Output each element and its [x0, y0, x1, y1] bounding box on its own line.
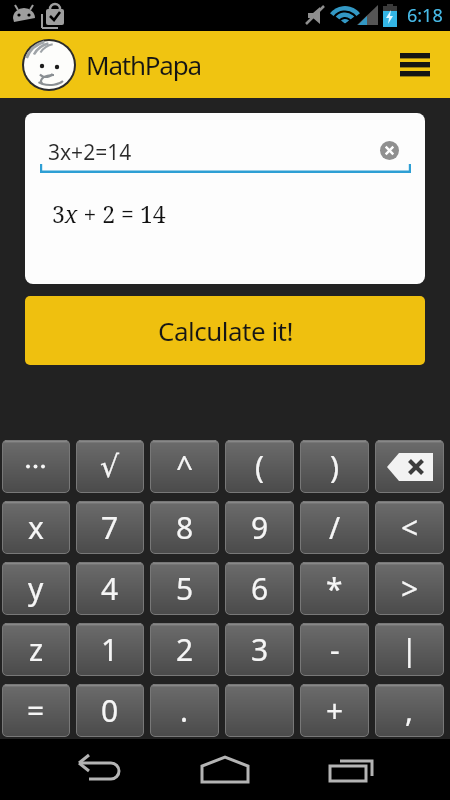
staticText: 2 [176, 629, 194, 670]
button[interactable]: √ [76, 440, 144, 493]
button[interactable]: 3x+2=14 [48, 138, 132, 167]
button[interactable] [225, 684, 294, 737]
button[interactable]: 6 [225, 562, 294, 615]
staticText: y [28, 568, 44, 609]
staticText: 7 [101, 507, 119, 548]
button[interactable]: = [2, 684, 70, 737]
button[interactable]: 1 [76, 623, 144, 676]
staticText: / [329, 507, 341, 548]
staticText: 1 [101, 629, 119, 670]
button[interactable] [387, 37, 443, 93]
staticText: z [29, 629, 44, 670]
staticText: 9 [251, 507, 269, 548]
staticText: √ [100, 449, 120, 484]
staticText: ^ [176, 446, 194, 487]
button[interactable]: - [300, 623, 369, 676]
button[interactable]: 3 [225, 623, 294, 676]
staticText: MathPapa [86, 47, 201, 82]
staticText: 8 [176, 507, 194, 548]
staticText: - [330, 629, 340, 670]
staticText: ( [255, 446, 264, 487]
button[interactable]: 0 [76, 684, 144, 737]
button[interactable] [375, 440, 444, 493]
button[interactable]: 5 [150, 562, 219, 615]
button[interactable] [320, 739, 382, 800]
staticText: 6:18 [407, 3, 443, 28]
button[interactable]: ( [225, 440, 294, 493]
staticText: 6 [251, 568, 269, 609]
button[interactable]: y [2, 562, 70, 615]
staticText: * [326, 568, 343, 609]
button[interactable]: . [150, 684, 219, 737]
staticText: , [405, 690, 414, 731]
button[interactable] [373, 134, 405, 166]
staticText: < [401, 507, 419, 548]
button[interactable] [70, 739, 132, 800]
staticText: 4 [101, 568, 119, 609]
button[interactable]: ) [300, 440, 369, 493]
staticText: ) [330, 446, 339, 487]
button[interactable]: 4 [76, 562, 144, 615]
button[interactable]: , [375, 684, 444, 737]
button[interactable] [194, 739, 256, 800]
staticText: 3 [251, 629, 269, 670]
staticText: 3x + 2 = 14 [52, 198, 166, 229]
button[interactable]: + [300, 684, 369, 737]
button[interactable]: 8 [150, 501, 219, 554]
staticText: > [401, 568, 419, 609]
staticText: 5 [176, 568, 194, 609]
staticText: Calculate it! [158, 313, 293, 348]
staticText: 0 [101, 690, 119, 731]
staticText: . [180, 690, 189, 731]
button[interactable] [2, 440, 70, 493]
staticText: x [28, 507, 44, 548]
button[interactable]: 7 [76, 501, 144, 554]
button[interactable]: / [300, 501, 369, 554]
button[interactable]: < [375, 501, 444, 554]
button[interactable]: 2 [150, 623, 219, 676]
button[interactable]: 9 [225, 501, 294, 554]
staticText: = [27, 690, 45, 731]
button[interactable]: ^ [150, 440, 219, 493]
button[interactable]: z [2, 623, 70, 676]
button[interactable]: | [375, 623, 444, 676]
staticText: + [326, 690, 344, 731]
button[interactable]: * [300, 562, 369, 615]
button[interactable]: > [375, 562, 444, 615]
staticText: | [401, 629, 418, 670]
button[interactable]: Calculate it! [25, 296, 425, 365]
button[interactable]: x [2, 501, 70, 554]
